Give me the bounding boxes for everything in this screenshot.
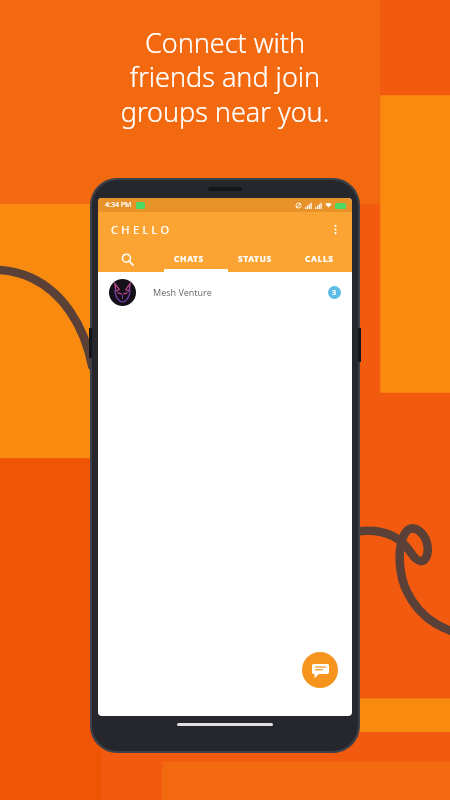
staticText: Mesh Venture xyxy=(153,286,212,298)
button[interactable]: CHATS xyxy=(156,246,222,272)
staticText: CHATS xyxy=(174,253,204,265)
staticText: Connect with friends and join groups nea… xyxy=(0,24,450,130)
button[interactable]: More options xyxy=(324,218,346,240)
staticText: CALLS xyxy=(305,253,334,265)
staticText: STATUS xyxy=(238,253,272,265)
staticText: 4:34 PM xyxy=(105,200,132,210)
staticText: CHELLO xyxy=(111,222,173,237)
staticText: 3 xyxy=(332,288,337,298)
button[interactable]: Search xyxy=(98,246,156,272)
button[interactable]: CALLS xyxy=(287,246,352,272)
button[interactable]: Mesh Venture xyxy=(98,272,352,312)
button[interactable]: STATUS xyxy=(222,246,287,272)
button[interactable]: New chat xyxy=(302,652,338,688)
